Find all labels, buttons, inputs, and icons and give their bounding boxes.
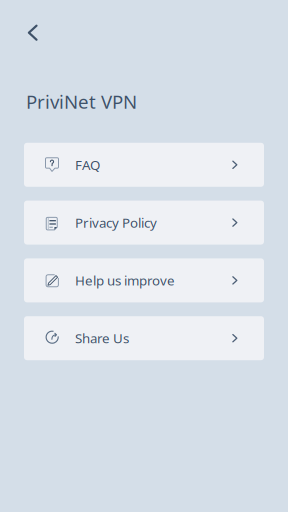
- staticText: PriviNet VPN: [26, 89, 137, 114]
- staticText: FAQ: [75, 156, 100, 174]
- staticText: Help us improve: [75, 271, 175, 289]
- button[interactable]: Privacy Policy: [24, 201, 264, 245]
- staticText: Share Us: [75, 329, 129, 347]
- button[interactable]: Help us improve: [24, 258, 264, 302]
- button[interactable]: FAQ: [24, 143, 264, 187]
- button[interactable]: Back: [12, 12, 54, 54]
- staticText: Privacy Policy: [75, 214, 157, 231]
- button[interactable]: Share Us: [24, 316, 264, 360]
